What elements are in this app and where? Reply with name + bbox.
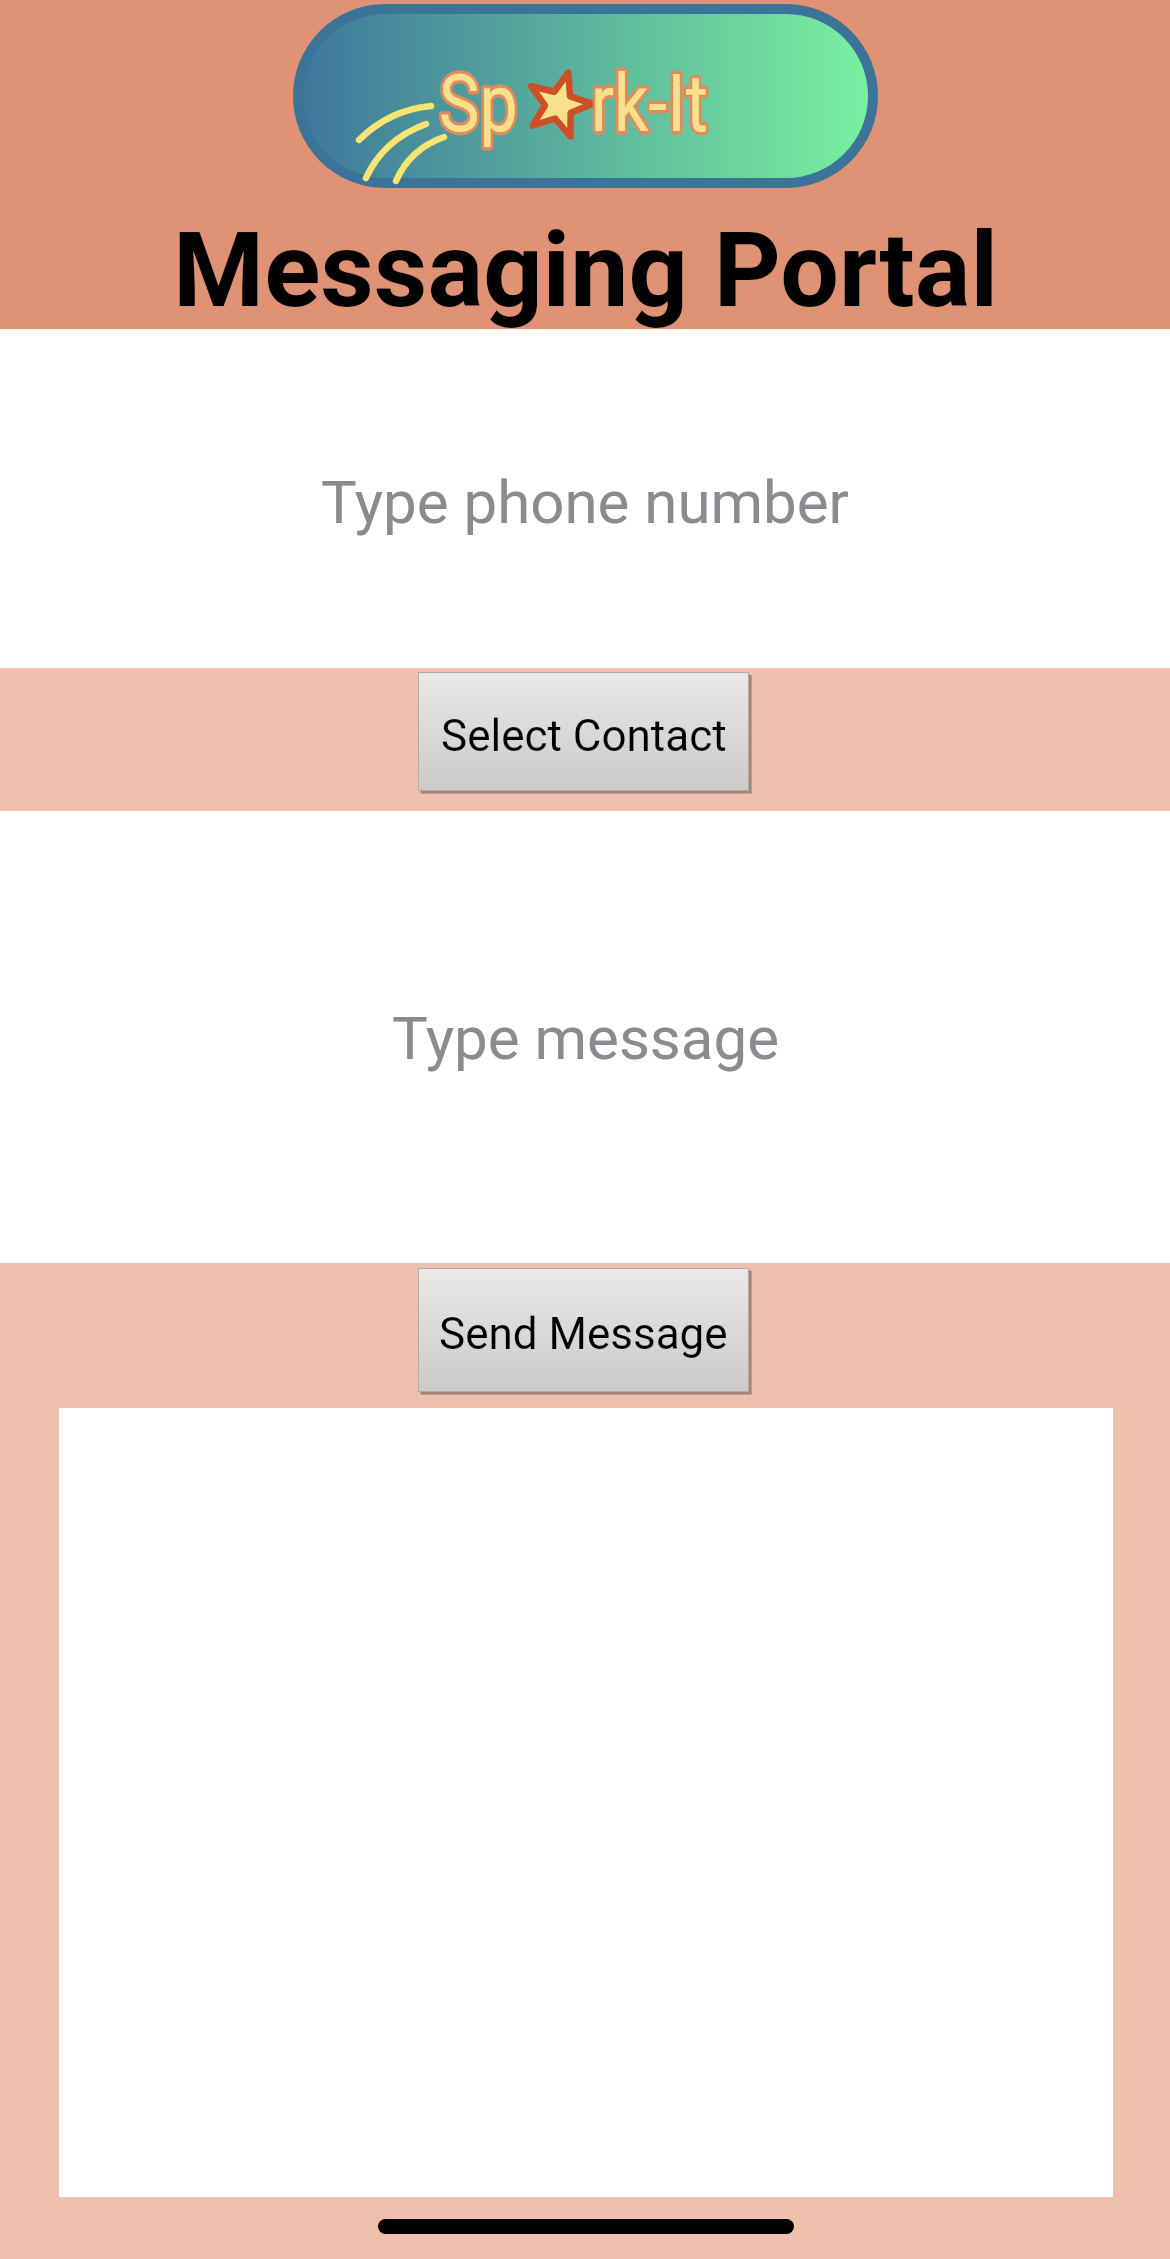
staticText: Messaging Portal [173,210,998,332]
staticText: Send Message [439,1308,728,1360]
button[interactable]: Type message [0,811,1170,1263]
staticText: rk-It [591,57,708,151]
staticText: Sp [439,57,518,151]
button[interactable]: Send Message [418,1268,753,1396]
button[interactable]: Type phone number [0,329,1170,668]
staticText: Select Contact [441,710,727,762]
staticText: Sp [439,57,518,151]
button[interactable]: Select Contact [418,672,753,795]
staticText: rk-It [591,57,708,151]
other: Spark-It logo [293,4,878,188]
staticText: Type message [392,1003,779,1073]
staticText: Type phone number [321,467,849,537]
